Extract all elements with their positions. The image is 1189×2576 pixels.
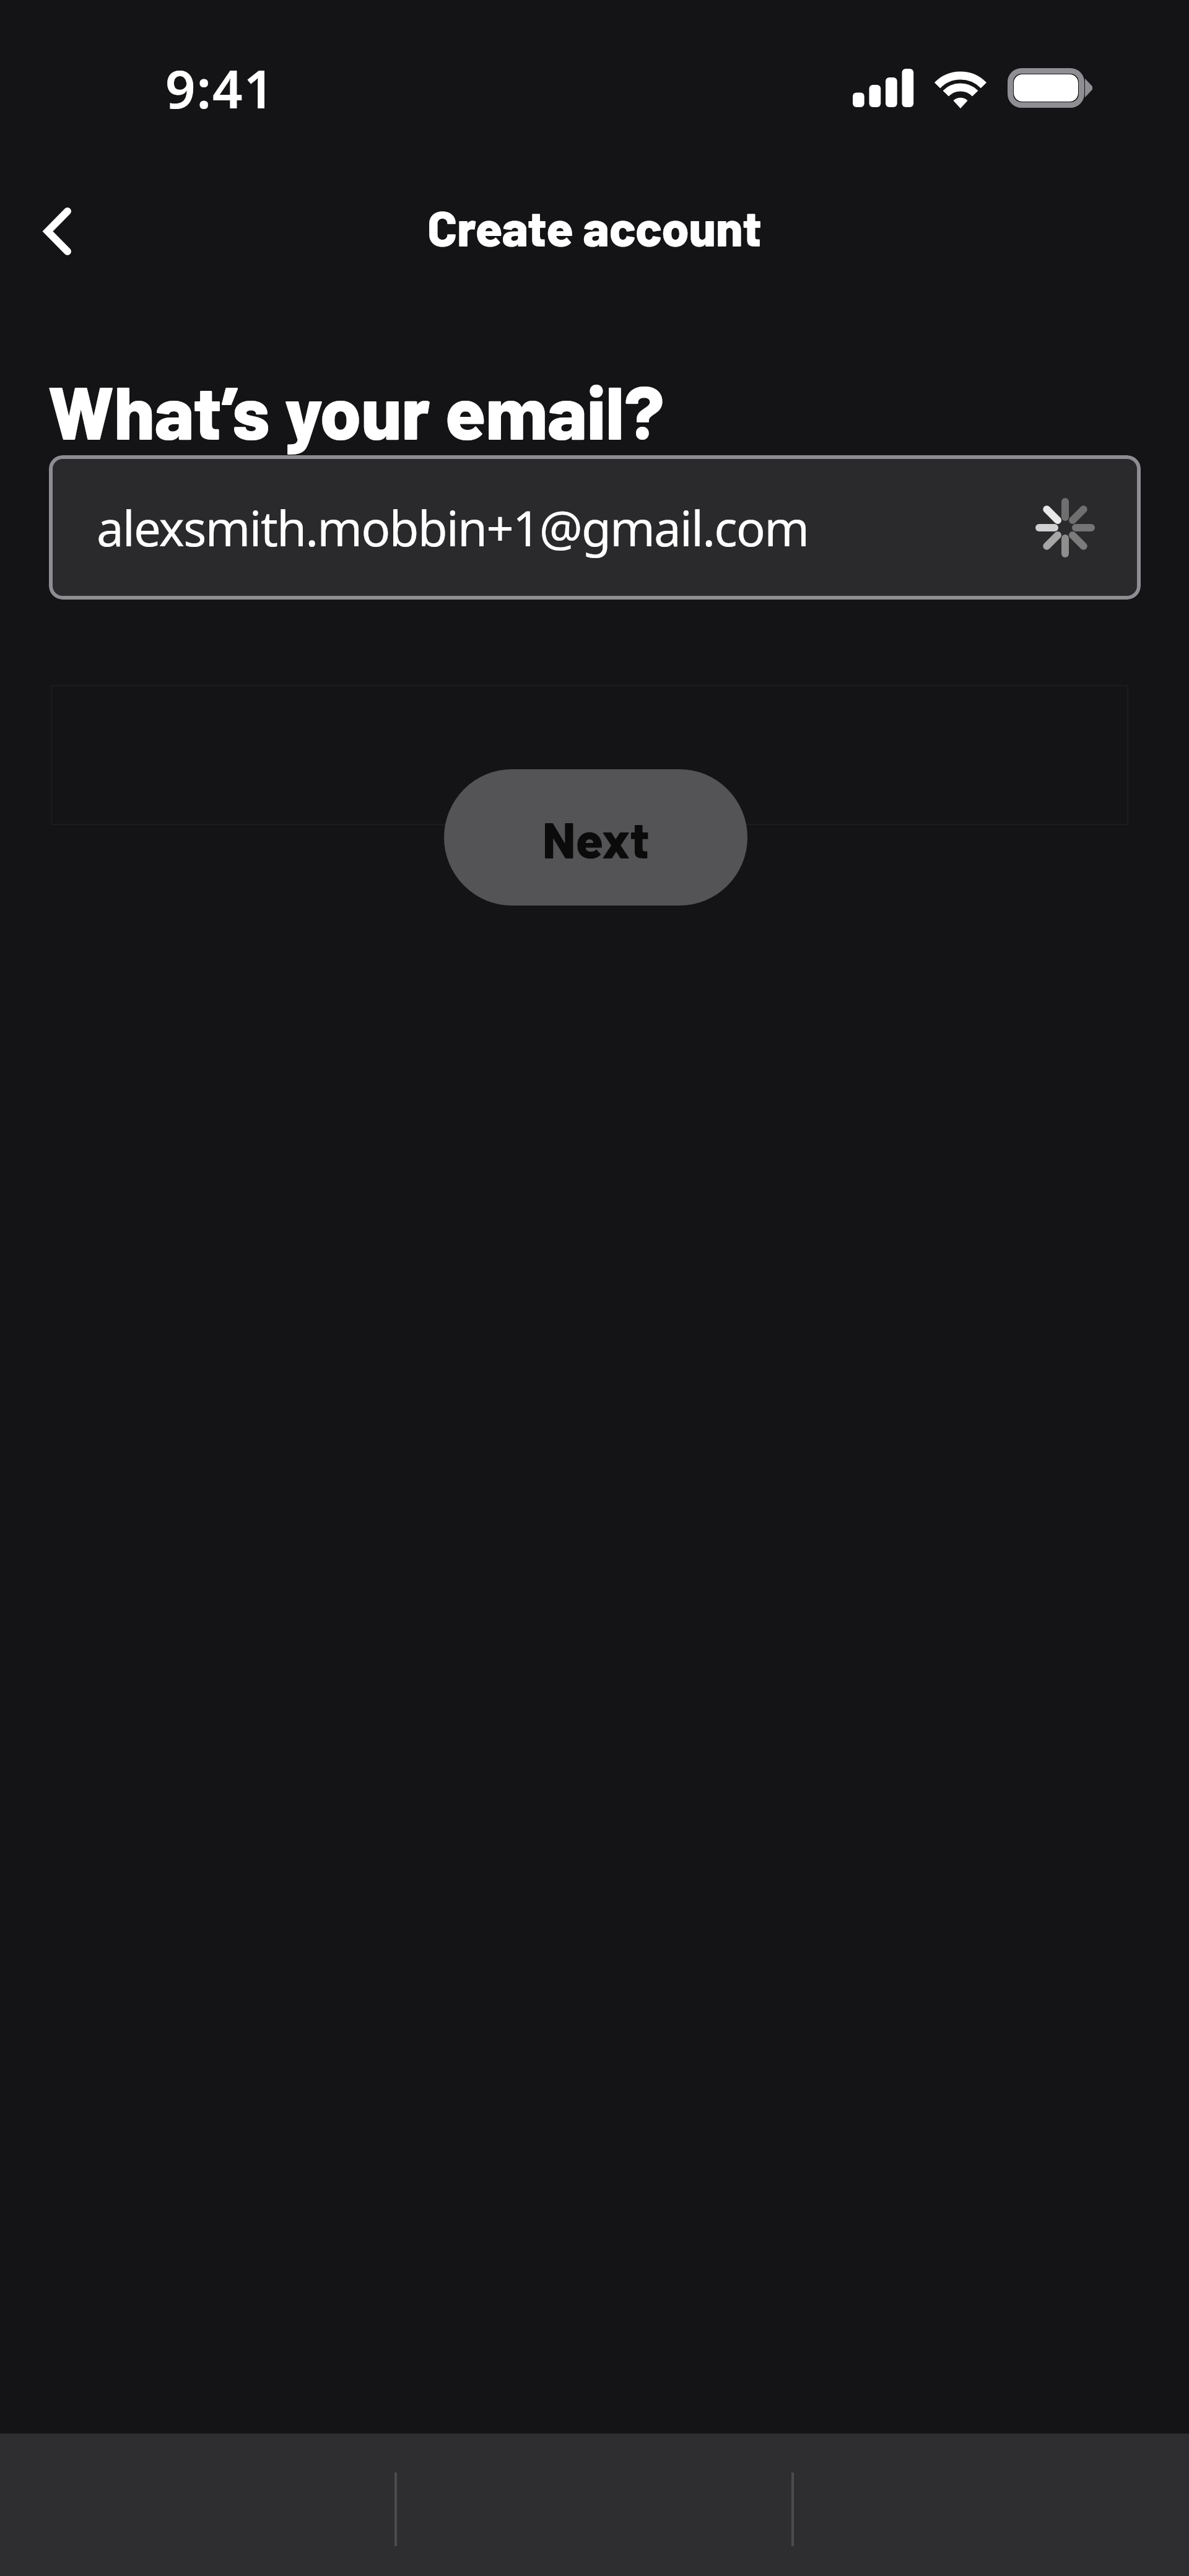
staticText: What’s your email?	[48, 366, 664, 455]
button[interactable]: alexsmith.mobbin+1@gmail.com	[49, 455, 1141, 600]
staticText: 9:41	[165, 52, 276, 124]
staticText: Create account	[0, 198, 1189, 256]
button[interactable]: Back	[18, 191, 97, 271]
button[interactable]: Next	[444, 769, 747, 906]
staticText: Next	[542, 808, 650, 868]
staticText: alexsmith.mobbin+1@gmail.com	[97, 495, 809, 561]
